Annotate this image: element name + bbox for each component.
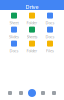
staticText: Docs <box>9 48 18 53</box>
button[interactable]: Docs <box>41 12 59 26</box>
button[interactable]: Files <box>48 86 59 100</box>
button[interactable]: Docs <box>41 26 59 40</box>
staticText: Files <box>46 48 54 53</box>
staticText: Folder <box>26 48 37 53</box>
button[interactable]: Create <box>26 86 37 100</box>
button[interactable]: Sheets <box>23 26 41 40</box>
staticText: Docs <box>45 34 54 39</box>
staticText: Sheets <box>26 34 37 39</box>
button[interactable]: Sheet <box>5 12 23 26</box>
staticText: Docs <box>45 20 54 25</box>
button[interactable]: Folder <box>23 12 41 26</box>
staticText: Folder <box>26 20 37 25</box>
button[interactable]: Folder <box>23 40 41 54</box>
staticText: Sheet <box>9 20 18 25</box>
button[interactable]: Shared <box>37 86 48 100</box>
button[interactable]: Files <box>41 40 59 54</box>
button[interactable]: Starred <box>15 86 26 100</box>
button[interactable]: Docs <box>5 40 23 54</box>
button[interactable]: Slides <box>5 26 23 40</box>
staticText: Slides <box>9 34 19 39</box>
staticText: Drive <box>25 3 38 11</box>
button[interactable]: Home <box>4 86 15 100</box>
